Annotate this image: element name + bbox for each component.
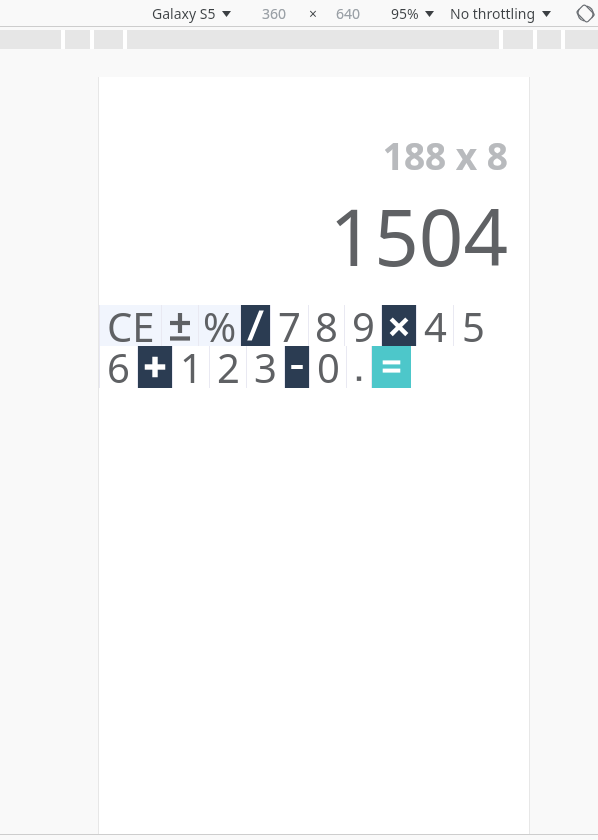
button[interactable]: Decimal point <box>347 346 371 388</box>
button[interactable]: 95% <box>391 4 434 23</box>
button[interactable]: Multiply <box>382 305 416 346</box>
button[interactable]: % <box>199 305 240 346</box>
staticText: No throttling <box>450 4 536 23</box>
staticText: 5 <box>462 299 485 353</box>
staticText: 188 x 8 <box>99 130 508 180</box>
other: Divide <box>241 305 270 346</box>
button[interactable]: 2 <box>210 346 246 388</box>
staticText: 360 <box>262 4 287 23</box>
staticText: % <box>203 299 237 353</box>
button[interactable]: 6 <box>100 346 137 388</box>
button[interactable]: Plus <box>138 346 172 388</box>
other: Plus <box>138 346 172 388</box>
staticText: 640 <box>336 4 361 23</box>
button[interactable]: 4 <box>417 305 453 346</box>
other: Plus minus <box>162 305 198 346</box>
staticText: 7 <box>278 299 301 353</box>
button[interactable]: Divide <box>241 305 270 346</box>
button[interactable]: Rotate <box>575 3 595 23</box>
staticText: 4 <box>424 299 447 353</box>
staticText: 2 <box>217 340 240 394</box>
other: Multiply <box>382 305 416 346</box>
button[interactable]: 5 <box>454 305 492 346</box>
staticText: × <box>309 4 318 23</box>
button[interactable]: No throttling <box>450 4 551 23</box>
button[interactable]: Plus minus <box>162 305 198 346</box>
button[interactable]: Equals <box>372 346 411 388</box>
button[interactable]: Galaxy S5 <box>152 4 231 23</box>
staticText: 0 <box>317 340 340 394</box>
staticText: 8 <box>315 299 338 353</box>
button[interactable]: 0 <box>310 346 346 388</box>
other: Equals <box>372 346 411 388</box>
staticText: 6 <box>107 340 130 394</box>
button[interactable]: 7 <box>271 305 308 346</box>
staticText: 1504 <box>99 183 508 289</box>
button[interactable]: CE <box>100 305 161 346</box>
button[interactable]: 3 <box>247 346 284 388</box>
staticText: 9 <box>352 299 375 353</box>
staticText: 95% <box>391 4 419 23</box>
button[interactable]: 1 <box>173 346 209 388</box>
button[interactable]: 9 <box>345 305 381 346</box>
other: Decimal point <box>347 346 371 388</box>
staticText: Galaxy S5 <box>152 4 216 23</box>
staticText: 1 <box>180 340 203 394</box>
other: Minus <box>285 346 309 388</box>
button[interactable]: Minus <box>285 346 309 388</box>
staticText: 3 <box>254 340 277 394</box>
button[interactable]: 8 <box>309 305 344 346</box>
staticText: CE <box>107 299 155 353</box>
